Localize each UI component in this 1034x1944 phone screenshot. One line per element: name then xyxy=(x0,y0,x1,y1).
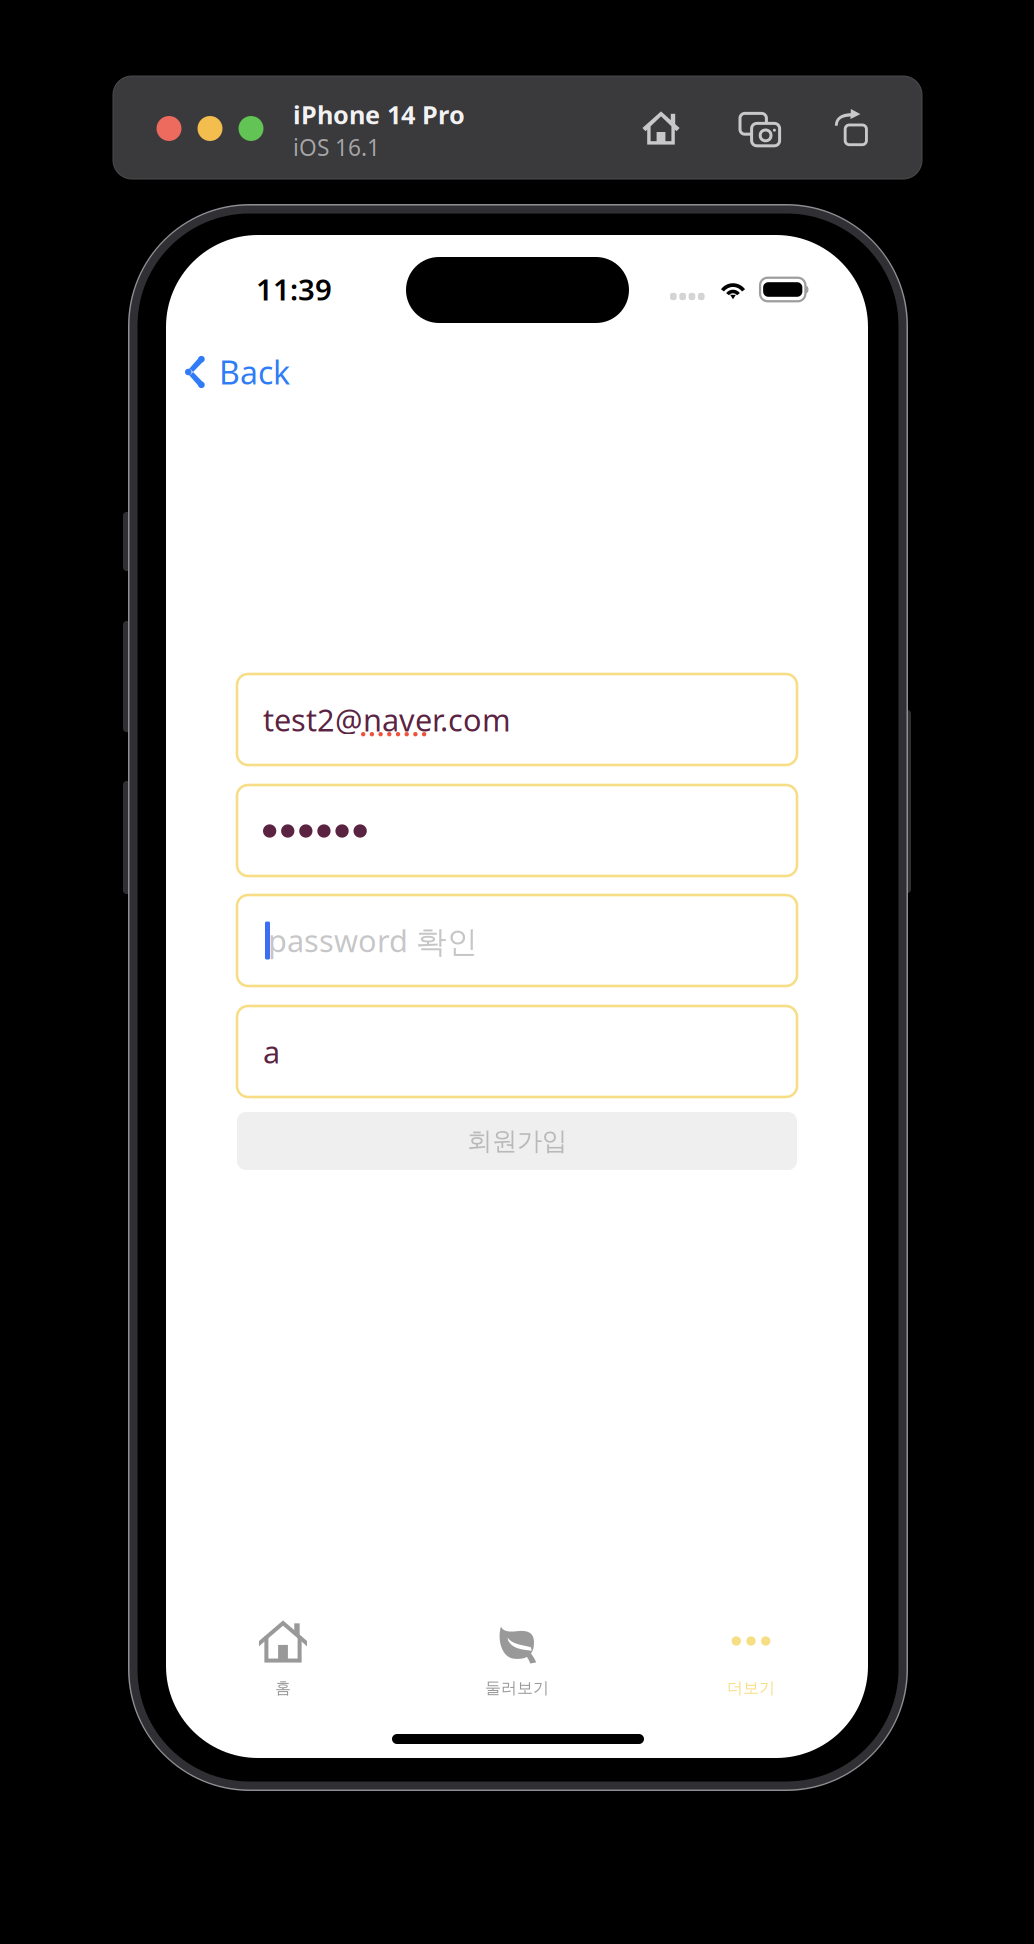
button[interactable]: Screenshot xyxy=(740,109,780,149)
button[interactable]: Back xyxy=(183,349,333,395)
button[interactable]: password 확인 xyxy=(237,895,797,986)
staticText: a xyxy=(263,1031,280,1072)
button[interactable]: 홈 xyxy=(166,1619,400,1699)
button[interactable]: test2@naver.com xyxy=(237,674,797,765)
button[interactable]: Share xyxy=(833,109,871,147)
button[interactable]: 둘러보기 xyxy=(400,1619,634,1699)
staticText: iOS 16.1 xyxy=(293,132,380,162)
staticText: 11:39 xyxy=(256,269,332,308)
staticText: 회원가입 xyxy=(467,1125,567,1156)
staticText: 둘러보기 xyxy=(485,1678,549,1698)
staticText: 더보기 xyxy=(727,1678,775,1698)
button[interactable]: Home xyxy=(641,108,681,148)
button[interactable] xyxy=(237,785,797,876)
staticText: iPhone 14 Pro xyxy=(293,98,465,131)
staticText: 홈 xyxy=(275,1678,291,1698)
staticText: test2@naver.com xyxy=(263,699,511,740)
staticText: Back xyxy=(219,351,290,393)
button[interactable]: a xyxy=(237,1006,797,1097)
button[interactable]: 회원가입 xyxy=(237,1112,797,1170)
button[interactable]: 더보기 xyxy=(634,1619,868,1699)
staticText: password 확인 xyxy=(268,920,478,961)
